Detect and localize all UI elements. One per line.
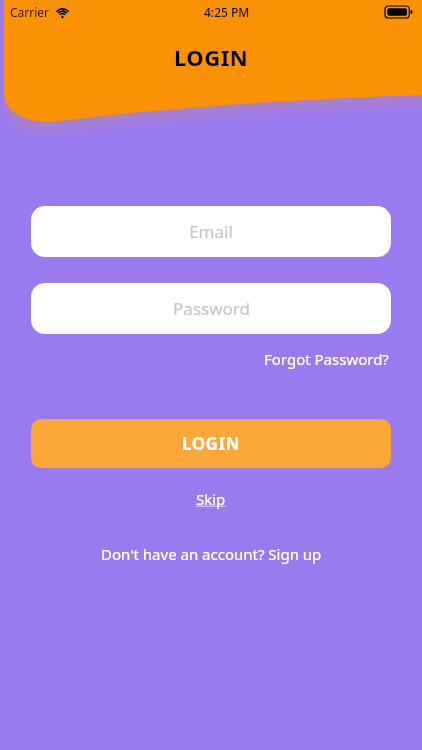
- button[interactable]: Don't have an account? Sign up: [95, 541, 328, 567]
- staticText: Carrier: [10, 4, 50, 20]
- staticText: Forgot Password?: [264, 349, 389, 369]
- staticText: Email: [189, 220, 233, 243]
- staticText: 4:25 PM: [204, 4, 250, 20]
- other: Battery: [385, 6, 412, 18]
- staticText: Password: [173, 297, 250, 320]
- other: Wi-Fi: [55, 6, 70, 18]
- staticText: Skip: [196, 489, 226, 509]
- button[interactable]: Forgot Password?: [262, 346, 391, 372]
- staticText: LOGIN: [182, 432, 240, 455]
- button[interactable]: Email: [31, 206, 391, 257]
- staticText: Don't have an account? Sign up: [101, 544, 322, 564]
- button[interactable]: Skip: [190, 486, 232, 512]
- button[interactable]: LOGIN: [31, 419, 391, 468]
- staticText: LOGIN: [174, 42, 249, 72]
- button[interactable]: Password: [31, 283, 391, 334]
